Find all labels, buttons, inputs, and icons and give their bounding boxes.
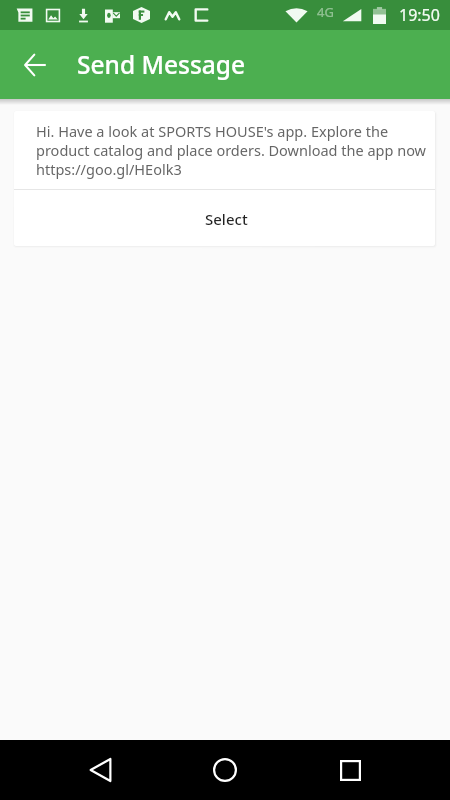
staticText: Select (205, 209, 248, 229)
staticText: Send Message (77, 48, 246, 81)
staticText: Hi. Have a look at SPORTS HOUSE's app. E… (36, 121, 431, 179)
button[interactable]: Home (201, 740, 249, 800)
staticText: 4G (317, 3, 334, 21)
button[interactable]: Back (76, 740, 124, 800)
button[interactable]: Navigate up (11, 41, 59, 89)
button[interactable]: Recent apps (326, 740, 374, 800)
button[interactable]: Select (14, 190, 435, 246)
staticText: 19:50 (399, 4, 440, 26)
